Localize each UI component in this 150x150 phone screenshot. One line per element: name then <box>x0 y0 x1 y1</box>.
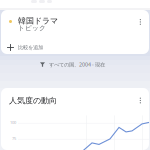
staticText: 比較を追加 <box>18 44 43 51</box>
staticText: 75 <box>12 136 16 141</box>
staticText: 人気度の動向 <box>9 96 57 105</box>
button[interactable]: 比較を追加 <box>1 44 149 54</box>
button[interactable]: 韓国ドラマ <box>1 10 149 32</box>
staticText: 100 <box>10 120 16 125</box>
button[interactable]: すべての国、2004 - 現在 <box>0 54 150 88</box>
staticText: トピック <box>18 24 46 32</box>
staticText: 韓国ドラマ <box>18 16 58 26</box>
staticText: すべての国、2004 - 現在 <box>49 61 105 68</box>
